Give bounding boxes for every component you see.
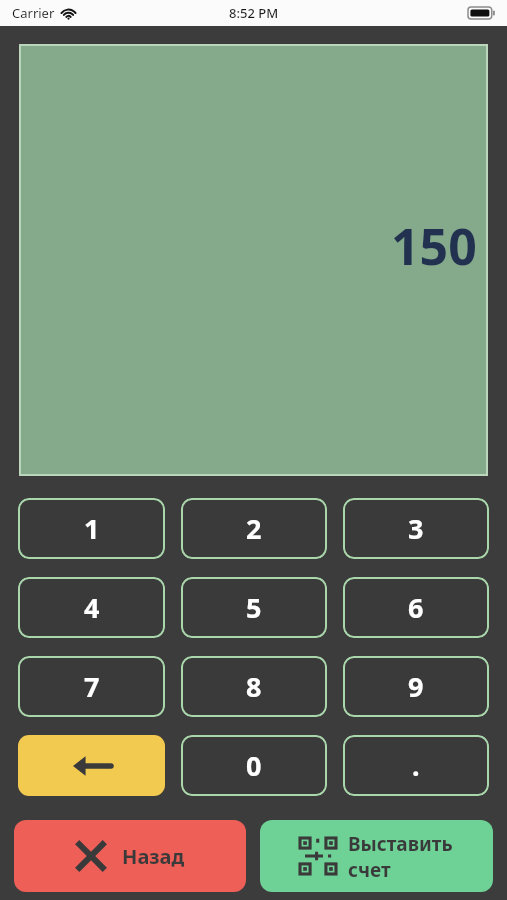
staticText: 8 [246, 668, 262, 705]
staticText: 8:52 PM [229, 4, 279, 22]
button[interactable]: 5 [181, 577, 327, 638]
staticText: 0 [246, 747, 262, 784]
staticText: Назад [122, 843, 185, 870]
staticText: 4 [84, 589, 100, 626]
staticText: Carrier [12, 4, 55, 22]
staticText: 9 [408, 668, 424, 705]
button[interactable]: 8 [181, 656, 327, 717]
button[interactable]: Backspace [18, 735, 165, 796]
button[interactable]: 4 [18, 577, 165, 638]
button[interactable]: 0 [181, 735, 327, 796]
staticText: 1 [84, 510, 100, 547]
button[interactable]: 6 [343, 577, 489, 638]
staticText: Выставить счет [348, 831, 453, 882]
button[interactable]: 2 [181, 498, 327, 559]
button[interactable]: 9 [343, 656, 489, 717]
staticText: 6 [408, 589, 424, 626]
staticText: 150 [391, 212, 477, 280]
staticText: 2 [246, 510, 262, 547]
button[interactable]: Назад [14, 820, 246, 892]
staticText: 3 [408, 510, 424, 547]
button[interactable]: 1 [18, 498, 165, 559]
staticText: 7 [84, 668, 100, 705]
button[interactable]: 7 [18, 656, 165, 717]
staticText: 5 [246, 589, 262, 626]
button[interactable]: Выставить счет [260, 820, 493, 892]
staticText: . [412, 747, 420, 784]
button[interactable]: . [343, 735, 489, 796]
button[interactable]: 3 [343, 498, 489, 559]
